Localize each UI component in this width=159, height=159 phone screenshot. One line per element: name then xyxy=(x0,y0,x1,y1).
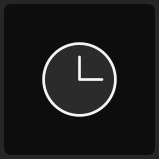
button[interactable]: Clock xyxy=(42,42,117,117)
